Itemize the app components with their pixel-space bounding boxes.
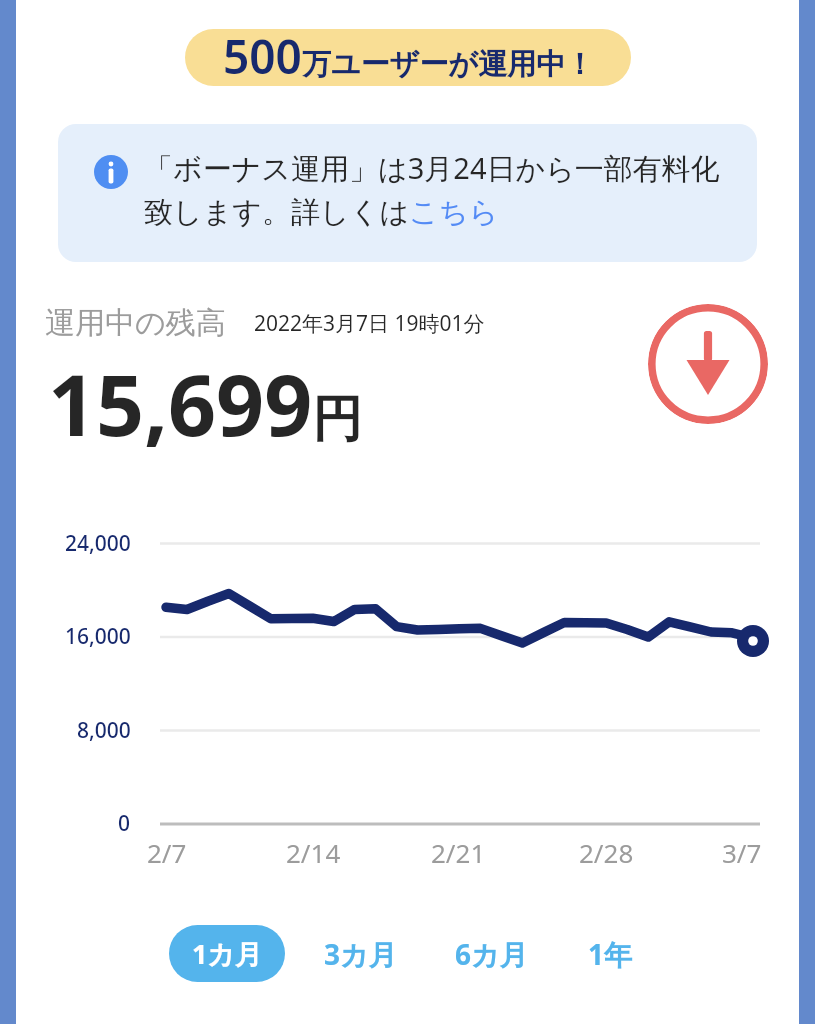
staticText: 1カ月 (192, 935, 263, 972)
staticText: 運用中の残高 (45, 304, 226, 342)
staticText: 1年 (588, 935, 633, 973)
button[interactable]: 6カ月 (439, 925, 544, 982)
staticText: 3/7 (722, 835, 762, 870)
staticText: 6カ月 (455, 935, 528, 973)
staticText: 致します。詳しくはこちら (144, 194, 499, 231)
staticText: 2022年3月7日 19時01分 (254, 309, 485, 338)
button[interactable]: 1年 (572, 925, 649, 982)
staticText: 「ボーナス運用」は3月24日から一部有料化 (144, 148, 720, 188)
staticText: 3カ月 (324, 935, 397, 973)
staticText: 2/7 (147, 835, 187, 870)
staticText: 500万ユーザーが運用中！ (223, 29, 594, 82)
staticText: 2/21 (431, 835, 486, 870)
button[interactable]: 500万ユーザーが運用中！ (185, 29, 631, 86)
button[interactable]: 1カ月 (169, 925, 285, 982)
staticText: 15,699円 (48, 346, 363, 460)
button[interactable]: 3カ月 (308, 925, 413, 982)
staticText: 0 (118, 809, 131, 838)
staticText: 16,000 (65, 622, 131, 651)
button[interactable]: Balance decreased (648, 304, 768, 424)
staticText: 2/14 (286, 835, 341, 870)
staticText: 2/28 (579, 835, 634, 870)
staticText: 8,000 (77, 716, 131, 745)
staticText: 24,000 (65, 529, 131, 558)
button[interactable]: 「ボーナス運用」は3月24日から一部有料化 (58, 124, 757, 262)
